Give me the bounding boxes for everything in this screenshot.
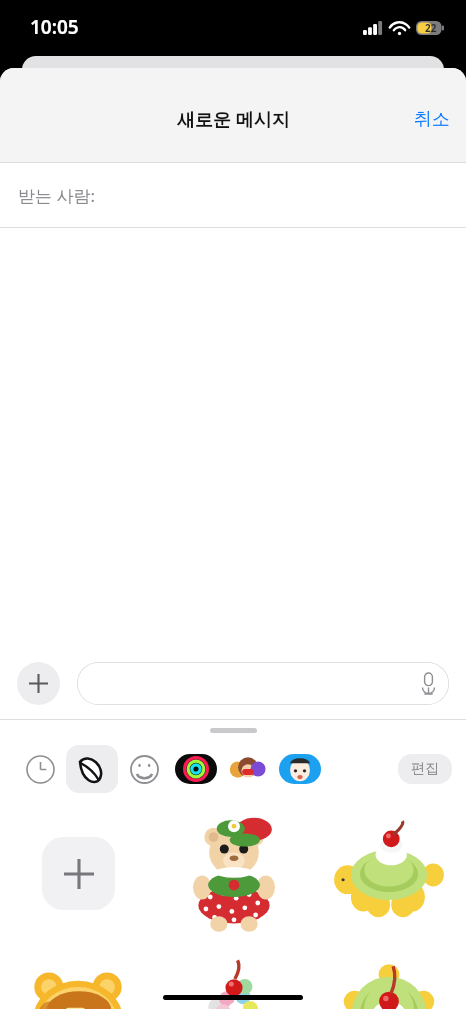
button[interactable]: 미모티콘 스티커	[274, 745, 326, 793]
other: 미모티콘 스티커	[279, 754, 321, 784]
button[interactable]: 앱 추가	[17, 662, 60, 705]
other: 이모티콘	[130, 755, 159, 784]
button[interactable]: 스티커 추가	[42, 837, 115, 910]
button[interactable]	[311, 799, 466, 947]
button[interactable]	[0, 947, 156, 1009]
other: 받아쓰기	[421, 673, 436, 694]
other: 스티커	[77, 754, 107, 784]
staticText: 22	[425, 21, 437, 35]
button[interactable]	[156, 799, 311, 947]
staticText: 받는 사람:	[18, 184, 95, 207]
button[interactable]: 받는 사람:	[0, 163, 466, 228]
button[interactable]: 최근 항목	[14, 745, 66, 793]
other: 미모티콘	[227, 754, 269, 784]
button[interactable]: 취소	[398, 100, 466, 139]
staticText: 편집	[411, 760, 439, 778]
button[interactable]: 스티커 추가	[0, 799, 156, 947]
staticText: 10:05	[30, 14, 79, 40]
button[interactable]: 받아쓰기	[77, 662, 449, 705]
other: 피트니스	[175, 754, 217, 784]
button[interactable]: 편집	[398, 754, 452, 784]
staticText: 취소	[414, 108, 450, 131]
button[interactable]: 스티커	[66, 745, 118, 793]
other: 최근 항목	[26, 755, 55, 784]
button[interactable]	[311, 947, 466, 1009]
button[interactable]	[156, 947, 311, 1009]
button[interactable]: 미모티콘	[222, 745, 274, 793]
button[interactable]: 피트니스	[170, 745, 222, 793]
button[interactable]: 이모티콘	[118, 745, 170, 793]
staticText: 새로운 메시지	[177, 107, 290, 132]
